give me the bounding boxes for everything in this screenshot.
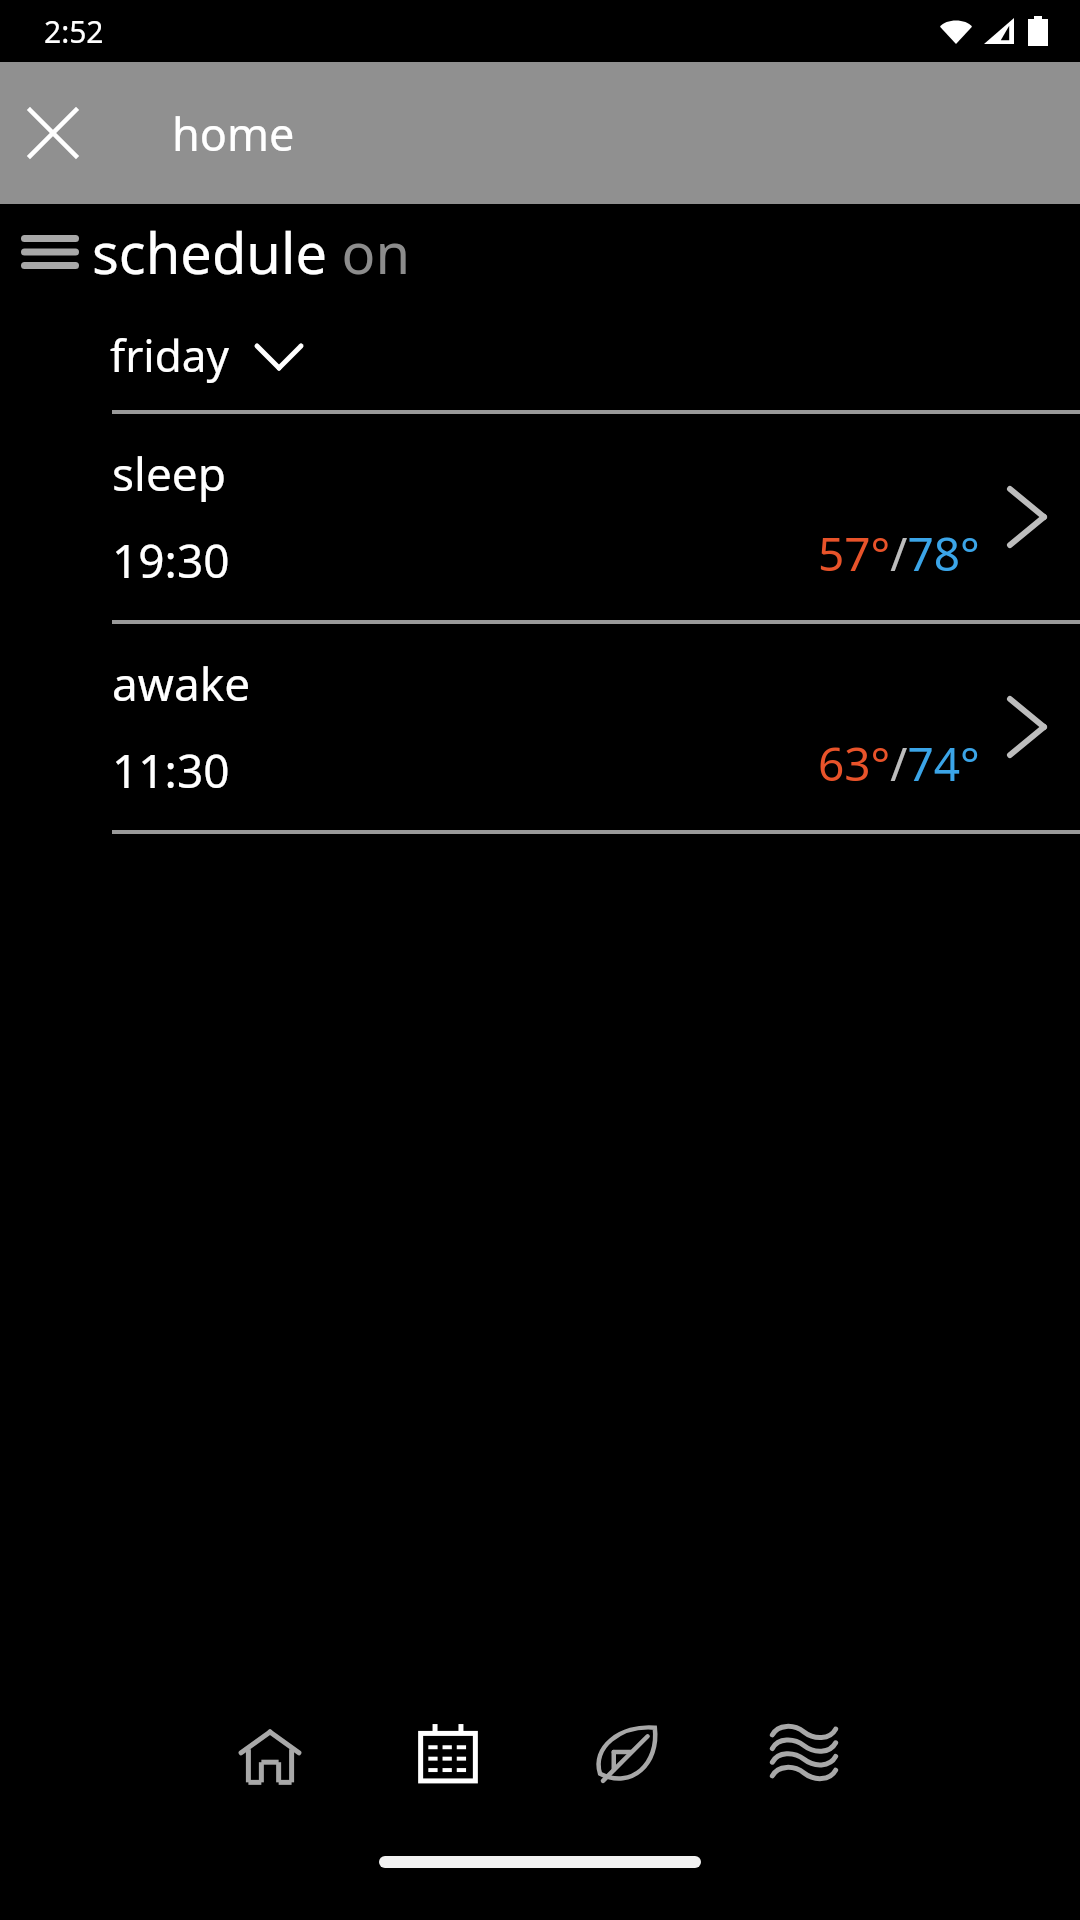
button[interactable]: sleep: [0, 414, 1080, 620]
button[interactable]: Schedule: [388, 1695, 508, 1815]
button[interactable]: Menu: [12, 222, 88, 282]
staticText: 11:30: [112, 739, 230, 802]
staticText: 2:52: [44, 11, 104, 52]
staticText: 63°/74°: [818, 732, 980, 795]
button[interactable]: Close: [10, 90, 96, 176]
staticText: 57°/78°: [818, 522, 980, 585]
staticText: 19:30: [112, 529, 230, 592]
staticText: home: [172, 103, 295, 164]
button[interactable]: friday: [110, 325, 301, 385]
button[interactable]: Home: [210, 1695, 330, 1815]
staticText: sleep: [112, 442, 227, 505]
staticText: friday: [110, 325, 229, 385]
staticText: schedule on: [92, 214, 411, 290]
button[interactable]: Air: [744, 1695, 864, 1815]
button[interactable]: awake: [0, 624, 1080, 830]
staticText: awake: [112, 652, 251, 715]
button[interactable]: Eco: [566, 1695, 686, 1815]
